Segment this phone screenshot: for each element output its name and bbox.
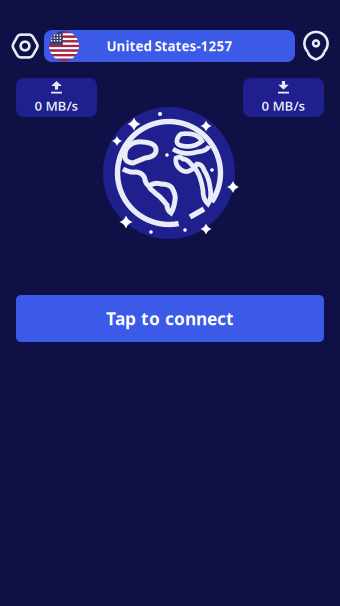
staticText: Tap to connect — [106, 307, 234, 330]
button[interactable]: Settings — [8, 29, 42, 63]
button[interactable]: Tap to connect — [16, 295, 324, 342]
staticText: 0 MB/s — [34, 97, 78, 114]
staticText: United States-1257 — [106, 37, 232, 55]
button[interactable]: Location — [299, 29, 333, 63]
button[interactable]: Download speed — [243, 78, 324, 117]
button[interactable]: United States-1257 — [44, 30, 295, 62]
staticText: 0 MB/s — [261, 97, 305, 114]
button[interactable]: Upload speed — [16, 78, 97, 117]
